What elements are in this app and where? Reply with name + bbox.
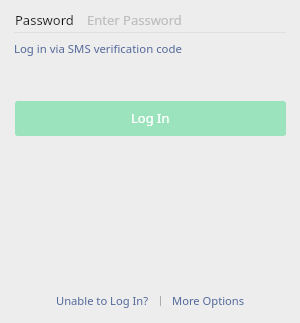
- staticText: Log In: [131, 109, 170, 127]
- button[interactable]: Log In: [15, 101, 286, 136]
- button[interactable]: More Options: [172, 293, 245, 308]
- button[interactable]: Unable to Log In?: [56, 293, 149, 308]
- staticText: Log in via SMS verification code: [14, 41, 182, 57]
- staticText: Unable to Log In?: [56, 293, 149, 308]
- staticText: More Options: [172, 293, 245, 308]
- staticText: Password: [15, 11, 74, 29]
- button[interactable]: Log in via SMS verification code: [14, 41, 182, 57]
- button[interactable]: Password: [0, 3, 300, 36]
- staticText: Enter Password: [87, 11, 182, 29]
